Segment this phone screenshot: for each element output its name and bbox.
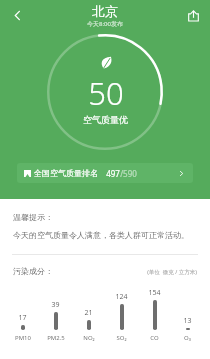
staticText: 154 bbox=[148, 288, 161, 298]
staticText: NO₂ bbox=[83, 334, 95, 342]
staticText: 北京 bbox=[92, 3, 118, 19]
staticText: 50 bbox=[88, 72, 124, 114]
staticText: 空气质量优 bbox=[83, 114, 128, 125]
staticText: (单位 微克 / 立方米) bbox=[147, 268, 197, 276]
staticText: 497 bbox=[106, 168, 120, 179]
staticText: SO₂ bbox=[116, 334, 127, 342]
staticText: 今天的空气质量令人满意，各类人群可正常活动。 bbox=[13, 230, 189, 240]
staticText: 13 bbox=[183, 316, 192, 326]
staticText: 温馨提示： bbox=[13, 212, 53, 222]
staticText: PM2.5 bbox=[47, 334, 65, 342]
staticText: CO bbox=[150, 334, 159, 342]
button[interactable]: Share bbox=[178, 0, 208, 30]
button[interactable]: 全国空气质量排名 bbox=[17, 163, 193, 183]
staticText: PM10 bbox=[15, 334, 31, 342]
staticText: O₃ bbox=[184, 334, 191, 342]
staticText: 全国空气质量排名 bbox=[34, 168, 98, 178]
staticText: 污染成分： bbox=[13, 266, 53, 276]
staticText: /590 bbox=[120, 168, 137, 179]
staticText: 21 bbox=[84, 308, 93, 318]
staticText: 17 bbox=[18, 313, 27, 323]
button[interactable]: Back bbox=[2, 0, 32, 30]
staticText: 今天8:00发布 bbox=[87, 20, 123, 28]
staticText: 39 bbox=[51, 300, 60, 310]
staticText: 124 bbox=[115, 292, 128, 302]
